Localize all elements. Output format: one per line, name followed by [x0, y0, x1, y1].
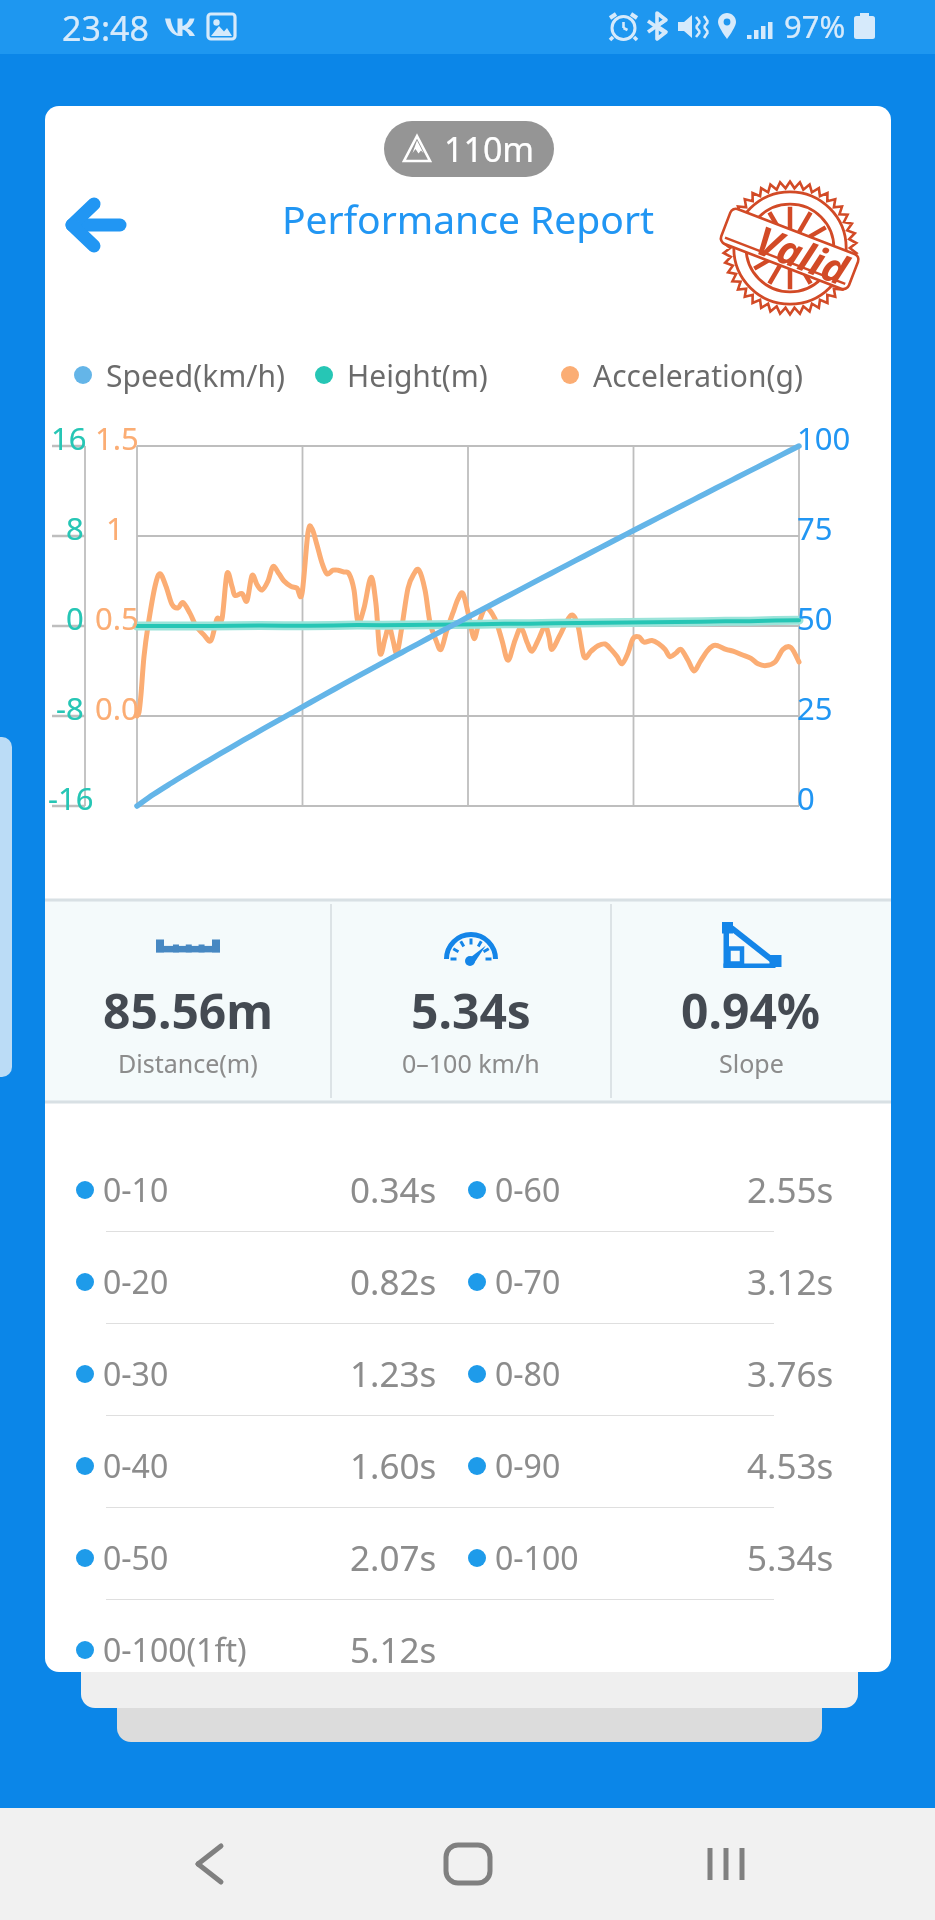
staticText: 97%	[784, 5, 846, 47]
staticText: 16	[51, 417, 87, 459]
button[interactable]: 0-50	[45, 1512, 891, 1603]
staticText: 2.07s	[350, 1534, 437, 1582]
staticText: 0.94%	[681, 978, 821, 1043]
staticText: Performance Report	[45, 192, 891, 245]
button[interactable]: 0-10	[45, 1144, 891, 1235]
staticText: 2.55s	[747, 1166, 834, 1214]
staticText: 3.12s	[747, 1258, 834, 1306]
staticText: 0	[797, 777, 815, 819]
button[interactable]: 0-30	[45, 1328, 891, 1419]
staticText: 0	[66, 597, 84, 639]
staticText: 75	[797, 507, 833, 549]
staticText: 8	[66, 507, 84, 549]
button[interactable]: Back	[159, 1814, 259, 1914]
button[interactable]: 0-40	[45, 1420, 891, 1511]
staticText: 0-40	[103, 1444, 169, 1488]
staticText: 4.53s	[747, 1442, 834, 1490]
staticText: 5.12s	[350, 1626, 437, 1672]
staticText: Speed(km/h)	[106, 355, 285, 395]
button[interactable]: Home	[418, 1814, 518, 1914]
staticText: 0-10	[103, 1168, 169, 1212]
button[interactable]: Valid stamp	[714, 172, 866, 324]
staticText: -16	[48, 777, 94, 819]
staticText: 0-70	[495, 1260, 561, 1304]
staticText: 100	[797, 417, 851, 459]
staticText: Slope	[719, 1046, 784, 1080]
staticText: 25	[797, 687, 833, 729]
staticText: 5.34s	[411, 978, 531, 1043]
staticText: 1.23s	[350, 1350, 437, 1398]
button[interactable]: Altitude 110m	[384, 121, 554, 177]
button[interactable]: 0-20	[45, 1236, 891, 1327]
staticText: 0.5	[95, 597, 139, 639]
staticText: 0.34s	[350, 1166, 437, 1214]
staticText: Distance(m)	[118, 1046, 258, 1080]
staticText: Acceleration(g)	[593, 355, 803, 395]
staticText: 1.5	[95, 417, 139, 459]
staticText: 50	[797, 597, 833, 639]
staticText: 0-90	[495, 1444, 561, 1488]
staticText: 0-60	[495, 1168, 561, 1212]
staticText: 0.82s	[350, 1258, 437, 1306]
button[interactable]: 5.34s	[331, 900, 611, 1102]
staticText: 0-100(1ft)	[103, 1628, 247, 1672]
staticText: 85.56m	[103, 978, 274, 1043]
staticText: 0-20	[103, 1260, 169, 1304]
button[interactable]: 0-100(1ft)	[45, 1604, 891, 1672]
staticText: -8	[56, 687, 84, 729]
staticText: 0-80	[495, 1352, 561, 1396]
staticText: Height(m)	[347, 355, 488, 395]
staticText: 0–100 km/h	[402, 1046, 540, 1080]
staticText: 1	[106, 507, 124, 549]
button[interactable]: Acceleration(g)	[561, 355, 803, 395]
staticText: 1.60s	[350, 1442, 437, 1490]
staticText: 110m	[444, 126, 535, 172]
staticText: 0-50	[103, 1536, 169, 1580]
button[interactable]: Speed(km/h)	[74, 355, 285, 395]
button[interactable]: Height(m)	[315, 355, 488, 395]
button[interactable]: Recent apps	[676, 1814, 776, 1914]
staticText: Valid	[748, 212, 856, 296]
button[interactable]: Back	[45, 177, 141, 273]
staticText: 0-100	[495, 1536, 579, 1580]
button[interactable]: 85.56m	[45, 900, 331, 1102]
staticText: 23:48	[62, 5, 149, 51]
staticText: 5.34s	[747, 1534, 834, 1582]
staticText: 0.0	[95, 687, 139, 729]
staticText: 0-30	[103, 1352, 169, 1396]
staticText: 3.76s	[747, 1350, 834, 1398]
button[interactable]: 0.94%	[611, 900, 891, 1102]
